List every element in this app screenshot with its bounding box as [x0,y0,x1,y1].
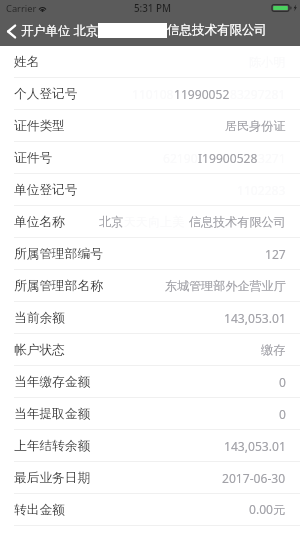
staticText: 当年提取金额 [14,406,91,422]
button[interactable]: 最后业务日期 [0,462,300,494]
staticText: 东城管理部外企营业厅 [165,278,286,293]
button[interactable]: 证件类型 [0,110,300,142]
button[interactable]: 所属管理部编号 [0,238,300,270]
staticText: 最后业务日期 [14,470,91,486]
button[interactable]: 证件号 [0,142,300,174]
staticText: 5:31 PM [134,2,171,15]
button[interactable]: 当年缴存金额 [0,366,300,398]
staticText: 证件类型 [14,118,65,134]
staticText: 单位登记号 [14,182,78,198]
staticText: 0.00元 [249,501,286,518]
staticText: 当前余额 [14,310,65,326]
staticText: 所属管理部编号 [14,246,103,262]
staticText: 0 [279,374,286,390]
staticText: 2017-06-30 [222,470,286,486]
staticText: 信息技术有限公司 [167,22,267,38]
staticText: 单位名称 [14,214,65,230]
button[interactable]: 姓名 [0,46,300,78]
staticText: 0 [279,406,286,422]
button[interactable]: 上年结转余额 [0,430,300,462]
staticText: I19900528 [198,150,258,166]
staticText: 当年缴存金额 [14,374,91,390]
staticText: 北京 [99,214,124,229]
staticText: 帐户状态 [14,342,65,358]
staticText: 所属管理部名称 [14,278,103,294]
staticText: 143,053.01 [224,438,286,454]
staticText: 信息技术有限公司 [189,214,286,229]
staticText: 缴存 [261,342,286,357]
staticText: Carrier [6,2,37,15]
staticText: 上年结转余额 [14,438,91,454]
staticText: 转出金额 [14,502,65,518]
staticText: 证件号 [14,150,53,166]
staticText: 127 [265,246,286,262]
button[interactable]: 所属管理部名称 [0,270,300,302]
button[interactable]: 个人登记号 [0,78,300,110]
button[interactable]: 当前余额 [0,302,300,334]
button[interactable]: 帐户状态 [0,334,300,366]
button[interactable]: 单位登记号 [0,174,300,206]
staticText: 11990052 [174,86,230,102]
staticText: 个人登记号 [14,86,78,102]
button[interactable]: 转出金额 [0,494,300,526]
button[interactable]: Back [0,17,21,43]
button[interactable]: 当年提取金额 [0,398,300,430]
button[interactable]: 单位名称 [0,206,300,238]
staticText: 居民身份证 [225,118,286,133]
staticText: 开户单位 北京 [21,22,98,39]
staticText: 143,053.01 [224,310,286,326]
staticText: 姓名 [14,54,40,70]
